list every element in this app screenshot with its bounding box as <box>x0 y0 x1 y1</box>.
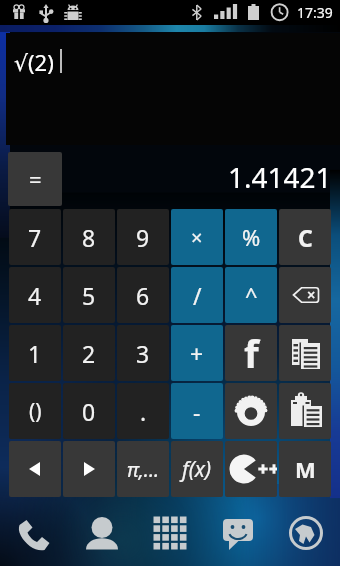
button[interactable]: π,... <box>117 441 169 497</box>
button[interactable]: . <box>117 383 169 439</box>
staticText: √(2) <box>14 47 54 77</box>
staticText: + <box>190 338 204 369</box>
staticText: / <box>193 280 202 311</box>
button[interactable]: % <box>225 209 277 265</box>
button[interactable]: C <box>279 209 331 265</box>
button[interactable]: 6 <box>117 267 169 323</box>
staticText: × <box>191 224 203 251</box>
button[interactable]: 0 <box>63 383 115 439</box>
button[interactable]: × <box>171 209 223 265</box>
button[interactable]: Messaging <box>204 498 272 561</box>
button[interactable] <box>279 383 331 439</box>
button[interactable] <box>63 441 115 497</box>
button[interactable]: = <box>8 152 62 206</box>
button[interactable] <box>225 441 277 497</box>
button[interactable]: 2 <box>63 325 115 381</box>
button[interactable]: M <box>279 441 331 497</box>
button[interactable]: + <box>171 325 223 381</box>
button[interactable]: Apps <box>136 498 204 561</box>
button[interactable]: ^ <box>225 267 277 323</box>
staticText: 0 <box>82 396 96 427</box>
button[interactable] <box>279 325 331 381</box>
staticText: 9 <box>136 222 150 253</box>
button[interactable] <box>9 441 61 497</box>
button[interactable]: f <box>225 325 277 381</box>
button[interactable]: 9 <box>117 209 169 265</box>
staticText: 3 <box>136 338 150 369</box>
staticText: 4 <box>28 280 42 311</box>
button[interactable]: 4 <box>9 267 61 323</box>
staticText: - <box>193 396 201 427</box>
staticText: f(x) <box>182 455 212 484</box>
staticText: () <box>29 397 42 426</box>
staticText: . <box>140 396 147 427</box>
button[interactable]: 7 <box>9 209 61 265</box>
button[interactable]: f(x) <box>171 441 223 497</box>
button[interactable]: 3 <box>117 325 169 381</box>
button[interactable]: 1 <box>9 325 61 381</box>
button[interactable]: Contacts <box>68 498 136 561</box>
staticText: M <box>295 454 316 484</box>
button[interactable]: Browser <box>272 498 340 561</box>
staticText: 2 <box>82 338 96 369</box>
button[interactable]: / <box>171 267 223 323</box>
staticText: 7 <box>28 222 42 253</box>
button[interactable]: Phone <box>0 498 68 561</box>
button[interactable]: 8 <box>63 209 115 265</box>
staticText: = <box>29 164 42 194</box>
staticText: f <box>244 327 259 379</box>
staticText: 5 <box>82 280 96 311</box>
staticText: ^ <box>245 280 258 310</box>
staticText: 1 <box>28 338 42 369</box>
staticText: 17:39 <box>297 3 333 22</box>
button[interactable] <box>279 267 331 323</box>
staticText: π,... <box>127 456 160 483</box>
staticText: % <box>242 222 261 252</box>
button[interactable] <box>225 383 277 439</box>
staticText: 6 <box>136 280 150 311</box>
staticText: C <box>298 222 313 253</box>
button[interactable]: () <box>9 383 61 439</box>
button[interactable]: 5 <box>63 267 115 323</box>
staticText: 1.41421 <box>228 158 332 196</box>
button[interactable]: - <box>171 383 223 439</box>
staticText: 8 <box>82 222 96 253</box>
